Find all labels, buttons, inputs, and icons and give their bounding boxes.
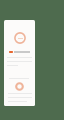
button[interactable]: Add xyxy=(15,82,24,91)
button[interactable]: Add xyxy=(4,20,35,106)
